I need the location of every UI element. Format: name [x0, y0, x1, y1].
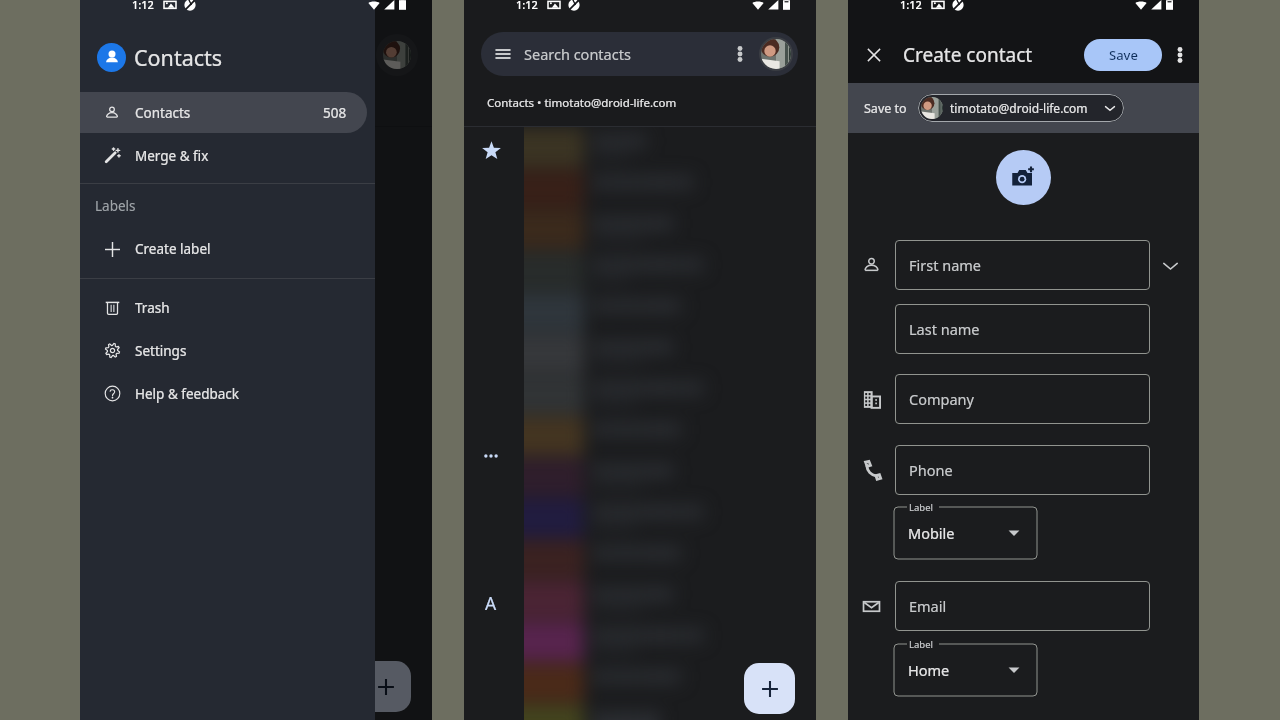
button[interactable]: Expand name fields [1156, 251, 1184, 279]
staticText: 1:12 [132, 0, 154, 12]
staticText: Label [909, 501, 933, 514]
staticText: Search contacts [524, 44, 631, 64]
button[interactable]: Label [894, 507, 1037, 559]
staticText: Phone [909, 460, 953, 480]
staticText: Save [1109, 46, 1138, 64]
staticText: 1:12 [516, 0, 538, 12]
button[interactable]: Create contact [360, 661, 411, 712]
button[interactable]: Search contacts [481, 32, 798, 76]
staticText: Contacts • timotato@droid-life.com [487, 95, 677, 111]
staticText: Company [909, 389, 974, 409]
staticText: Save to [864, 100, 907, 117]
button[interactable]: Last name [895, 304, 1150, 354]
staticText: 1:12 [900, 0, 922, 12]
button[interactable]: More options [1170, 45, 1190, 65]
staticText: Merge & fix [135, 147, 209, 165]
staticText: 508 [323, 104, 347, 122]
staticText: Mobile [908, 523, 955, 543]
button[interactable]: Settings [104, 329, 375, 372]
button[interactable]: Label [894, 644, 1037, 696]
button[interactable]: Email [895, 581, 1150, 631]
button[interactable]: Trash [104, 286, 375, 329]
staticText: Contacts [135, 104, 191, 122]
staticText: timotato@droid-life.com [950, 100, 1088, 116]
staticText: Settings [135, 342, 187, 360]
staticText: Labels [95, 197, 136, 215]
staticText: Contacts [134, 43, 223, 72]
staticText: Help & feedback [135, 385, 240, 403]
button[interactable]: Contacts [80, 92, 367, 133]
staticText: Trash [135, 299, 170, 317]
button[interactable]: Add photo [996, 150, 1051, 205]
button[interactable]: Create contact [744, 663, 795, 714]
staticText: Email [909, 596, 947, 616]
button[interactable]: Save [1084, 39, 1162, 71]
staticText: First name [909, 255, 982, 275]
button[interactable]: Close [860, 41, 888, 69]
staticText: Home [908, 660, 950, 680]
staticText: Last name [909, 319, 980, 339]
button[interactable]: Help & feedback [104, 372, 375, 415]
staticText: A [485, 591, 497, 615]
button[interactable]: Merge & fix [104, 133, 375, 178]
staticText: Create label [135, 240, 211, 258]
button[interactable]: First name [895, 240, 1150, 290]
button[interactable]: Company [895, 374, 1150, 424]
staticText: Label [909, 638, 933, 651]
button[interactable]: timotato@droid-life.com [918, 94, 1124, 122]
staticText: Create contact [903, 42, 1033, 68]
button[interactable]: Create label [104, 227, 375, 271]
button[interactable]: Phone [895, 445, 1150, 495]
